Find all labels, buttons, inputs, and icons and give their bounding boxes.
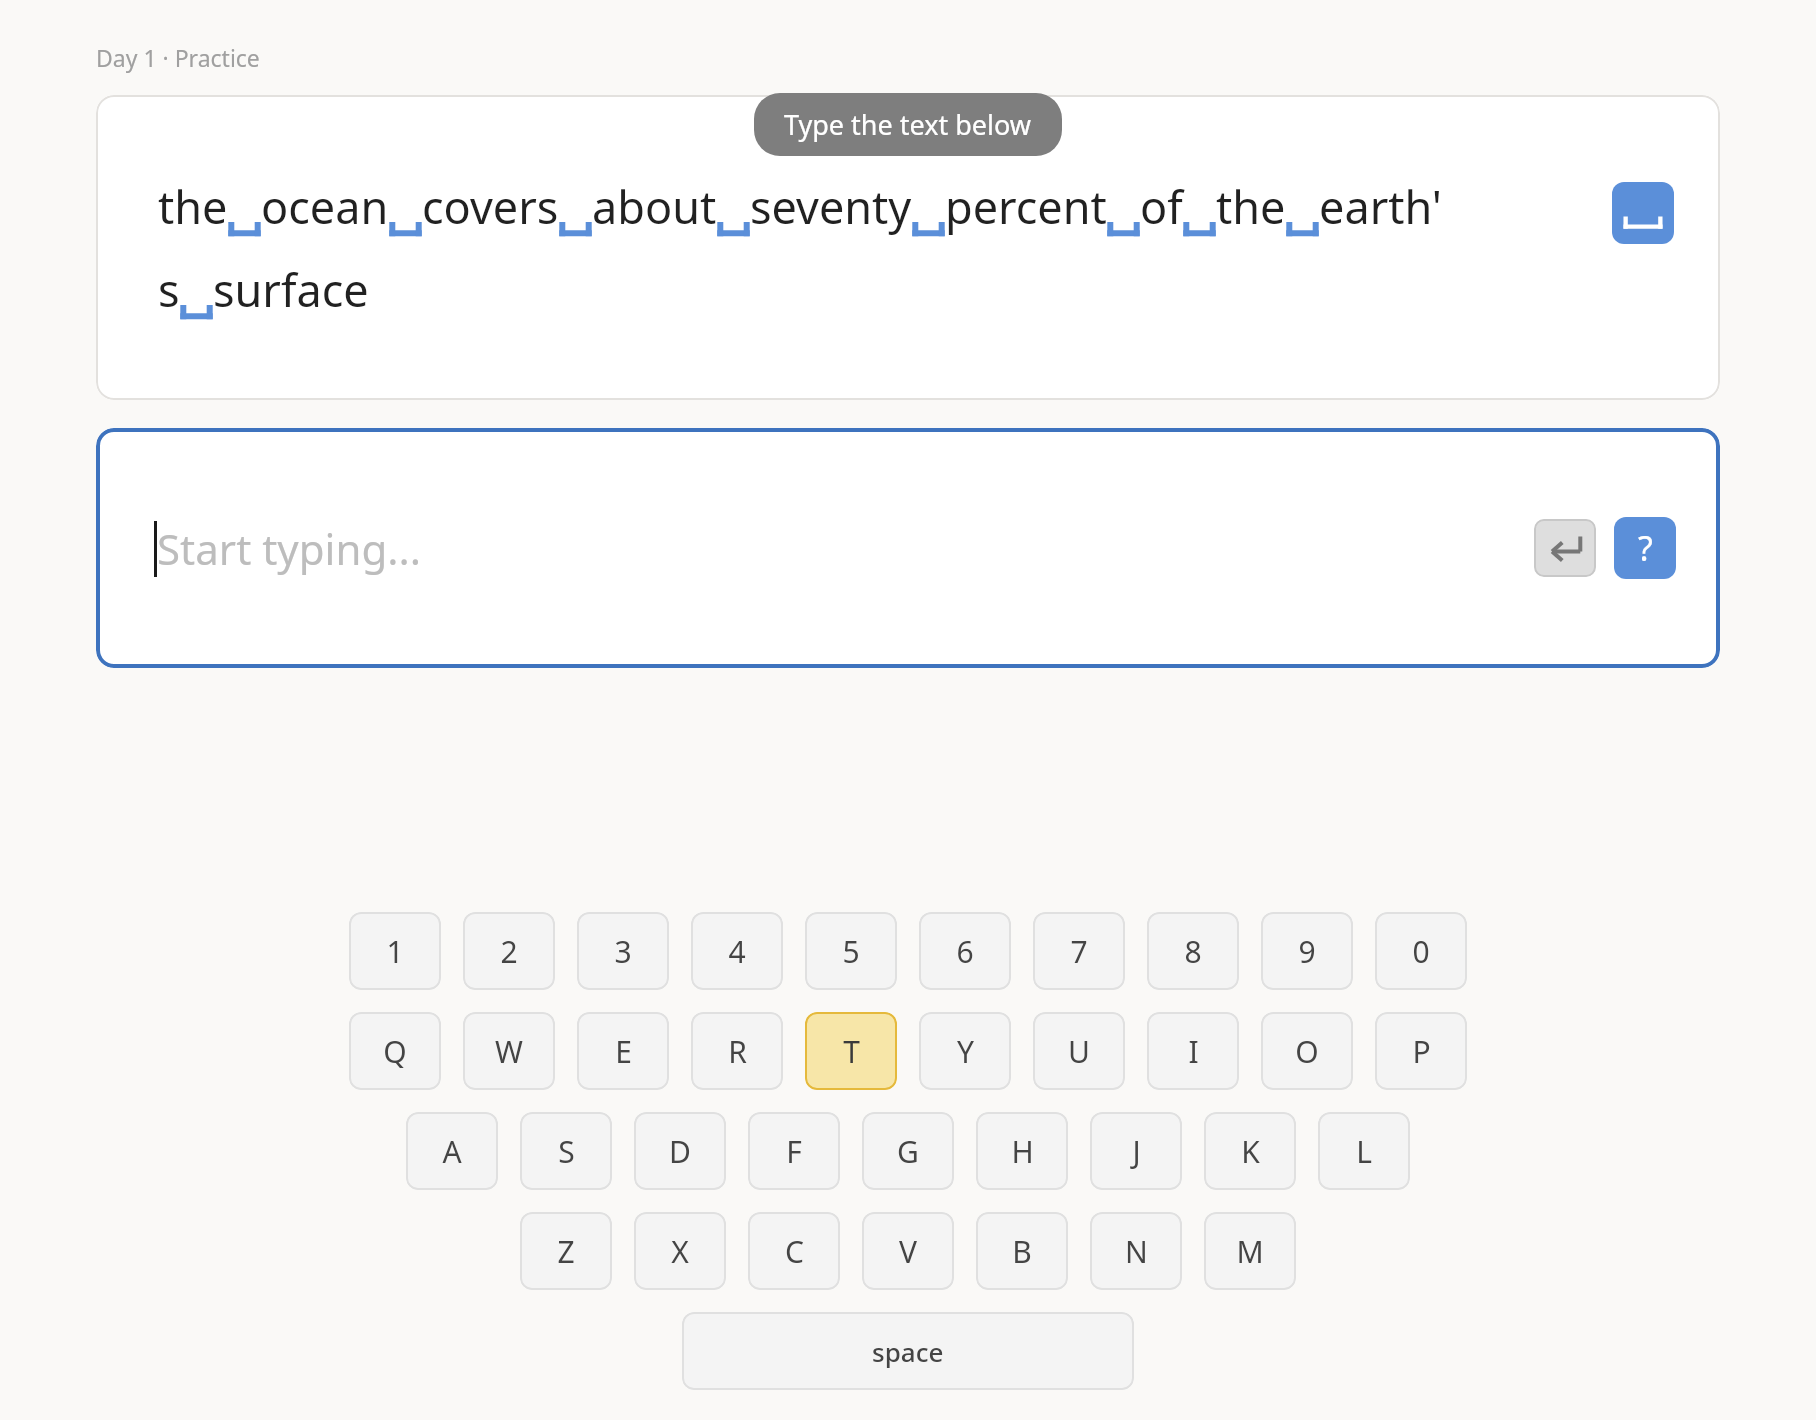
button[interactable]: S bbox=[520, 1112, 612, 1190]
staticText: Start typing... bbox=[157, 520, 422, 577]
button[interactable]: Y bbox=[919, 1012, 1011, 1090]
button[interactable]: L bbox=[1318, 1112, 1410, 1190]
staticText: V bbox=[899, 1231, 917, 1272]
staticText: ocean bbox=[261, 176, 389, 237]
staticText: K bbox=[1241, 1131, 1260, 1172]
staticText: 3 bbox=[614, 931, 632, 972]
button[interactable]: A bbox=[406, 1112, 498, 1190]
button[interactable]: X bbox=[634, 1212, 726, 1290]
button[interactable]: Help bbox=[1614, 517, 1676, 579]
staticText: B bbox=[1012, 1231, 1032, 1272]
staticText: 9 bbox=[1298, 931, 1316, 972]
staticText: F bbox=[786, 1131, 802, 1172]
button[interactable]: M bbox=[1204, 1212, 1296, 1290]
button[interactable]: H bbox=[976, 1112, 1068, 1190]
staticText: 5 bbox=[842, 931, 860, 972]
staticText: the bbox=[1216, 176, 1286, 237]
staticText: J bbox=[1132, 1131, 1141, 1172]
staticText: Type the text below bbox=[784, 106, 1032, 143]
staticText: ? bbox=[1638, 525, 1653, 571]
staticText: covers bbox=[422, 176, 559, 237]
button[interactable]: F bbox=[748, 1112, 840, 1190]
staticText: I bbox=[1188, 1031, 1199, 1072]
button[interactable]: Start typing... bbox=[96, 428, 1720, 668]
staticText: of bbox=[1140, 176, 1183, 237]
button[interactable]: 8 bbox=[1147, 912, 1239, 990]
staticText: O bbox=[1295, 1031, 1319, 1072]
button[interactable]: N bbox=[1090, 1212, 1182, 1290]
button[interactable]: 7 bbox=[1033, 912, 1125, 990]
staticText: percent bbox=[945, 176, 1107, 237]
button[interactable]: 3 bbox=[577, 912, 669, 990]
staticText: C bbox=[785, 1231, 804, 1272]
staticText: T bbox=[843, 1031, 860, 1072]
button[interactable]: R bbox=[691, 1012, 783, 1090]
staticText: about bbox=[592, 176, 717, 237]
button[interactable]: Enter bbox=[1534, 519, 1596, 577]
button[interactable]: 9 bbox=[1261, 912, 1353, 990]
staticText: Z bbox=[557, 1231, 575, 1272]
button[interactable]: 0 bbox=[1375, 912, 1467, 990]
button[interactable]: 5 bbox=[805, 912, 897, 990]
button[interactable]: W bbox=[463, 1012, 555, 1090]
staticText: s bbox=[158, 259, 180, 320]
staticText: 7 bbox=[1070, 931, 1088, 972]
staticText: seventy bbox=[750, 176, 912, 237]
button[interactable]: space bbox=[682, 1312, 1134, 1390]
staticText: S bbox=[558, 1131, 575, 1172]
button[interactable]: U bbox=[1033, 1012, 1125, 1090]
button[interactable]: 6 bbox=[919, 912, 1011, 990]
staticText: Q bbox=[383, 1031, 407, 1072]
staticText: Day 1 · Practice bbox=[96, 42, 260, 73]
staticText: M bbox=[1236, 1231, 1264, 1272]
staticText: G bbox=[897, 1131, 919, 1172]
button[interactable]: Z bbox=[520, 1212, 612, 1290]
button[interactable]: D bbox=[634, 1112, 726, 1190]
button[interactable]: C bbox=[748, 1212, 840, 1290]
staticText: D bbox=[669, 1131, 691, 1172]
button[interactable]: O bbox=[1261, 1012, 1353, 1090]
button[interactable]: V bbox=[862, 1212, 954, 1290]
staticText: R bbox=[728, 1031, 747, 1072]
staticText: P bbox=[1412, 1031, 1431, 1072]
staticText: H bbox=[1011, 1131, 1034, 1172]
button[interactable]: Q bbox=[349, 1012, 441, 1090]
button[interactable]: 2 bbox=[463, 912, 555, 990]
staticText: L bbox=[1356, 1131, 1372, 1172]
button[interactable]: T bbox=[805, 1012, 897, 1090]
button[interactable]: 4 bbox=[691, 912, 783, 990]
staticText: space bbox=[872, 1334, 944, 1369]
button[interactable]: Space key hint bbox=[1612, 182, 1674, 244]
staticText: A bbox=[442, 1131, 462, 1172]
staticText: 4 bbox=[728, 931, 746, 972]
staticText: 8 bbox=[1184, 931, 1202, 972]
staticText: 0 bbox=[1412, 931, 1430, 972]
staticText: N bbox=[1125, 1231, 1148, 1272]
staticText: surface bbox=[213, 259, 369, 320]
staticText: 6 bbox=[956, 931, 974, 972]
button[interactable]: B bbox=[976, 1212, 1068, 1290]
staticText: Y bbox=[957, 1031, 974, 1072]
staticText: X bbox=[671, 1231, 689, 1272]
button[interactable]: E bbox=[577, 1012, 669, 1090]
staticText: 2 bbox=[500, 931, 518, 972]
button[interactable]: I bbox=[1147, 1012, 1239, 1090]
staticText: W bbox=[495, 1031, 523, 1072]
staticText: U bbox=[1068, 1031, 1090, 1072]
staticText: E bbox=[615, 1031, 632, 1072]
staticText: earth' bbox=[1319, 176, 1442, 237]
button[interactable]: 1 bbox=[349, 912, 441, 990]
staticText: 1 bbox=[386, 931, 404, 972]
button[interactable]: K bbox=[1204, 1112, 1296, 1190]
button[interactable]: G bbox=[862, 1112, 954, 1190]
staticText: the bbox=[158, 176, 228, 237]
button[interactable]: P bbox=[1375, 1012, 1467, 1090]
button[interactable]: J bbox=[1090, 1112, 1182, 1190]
